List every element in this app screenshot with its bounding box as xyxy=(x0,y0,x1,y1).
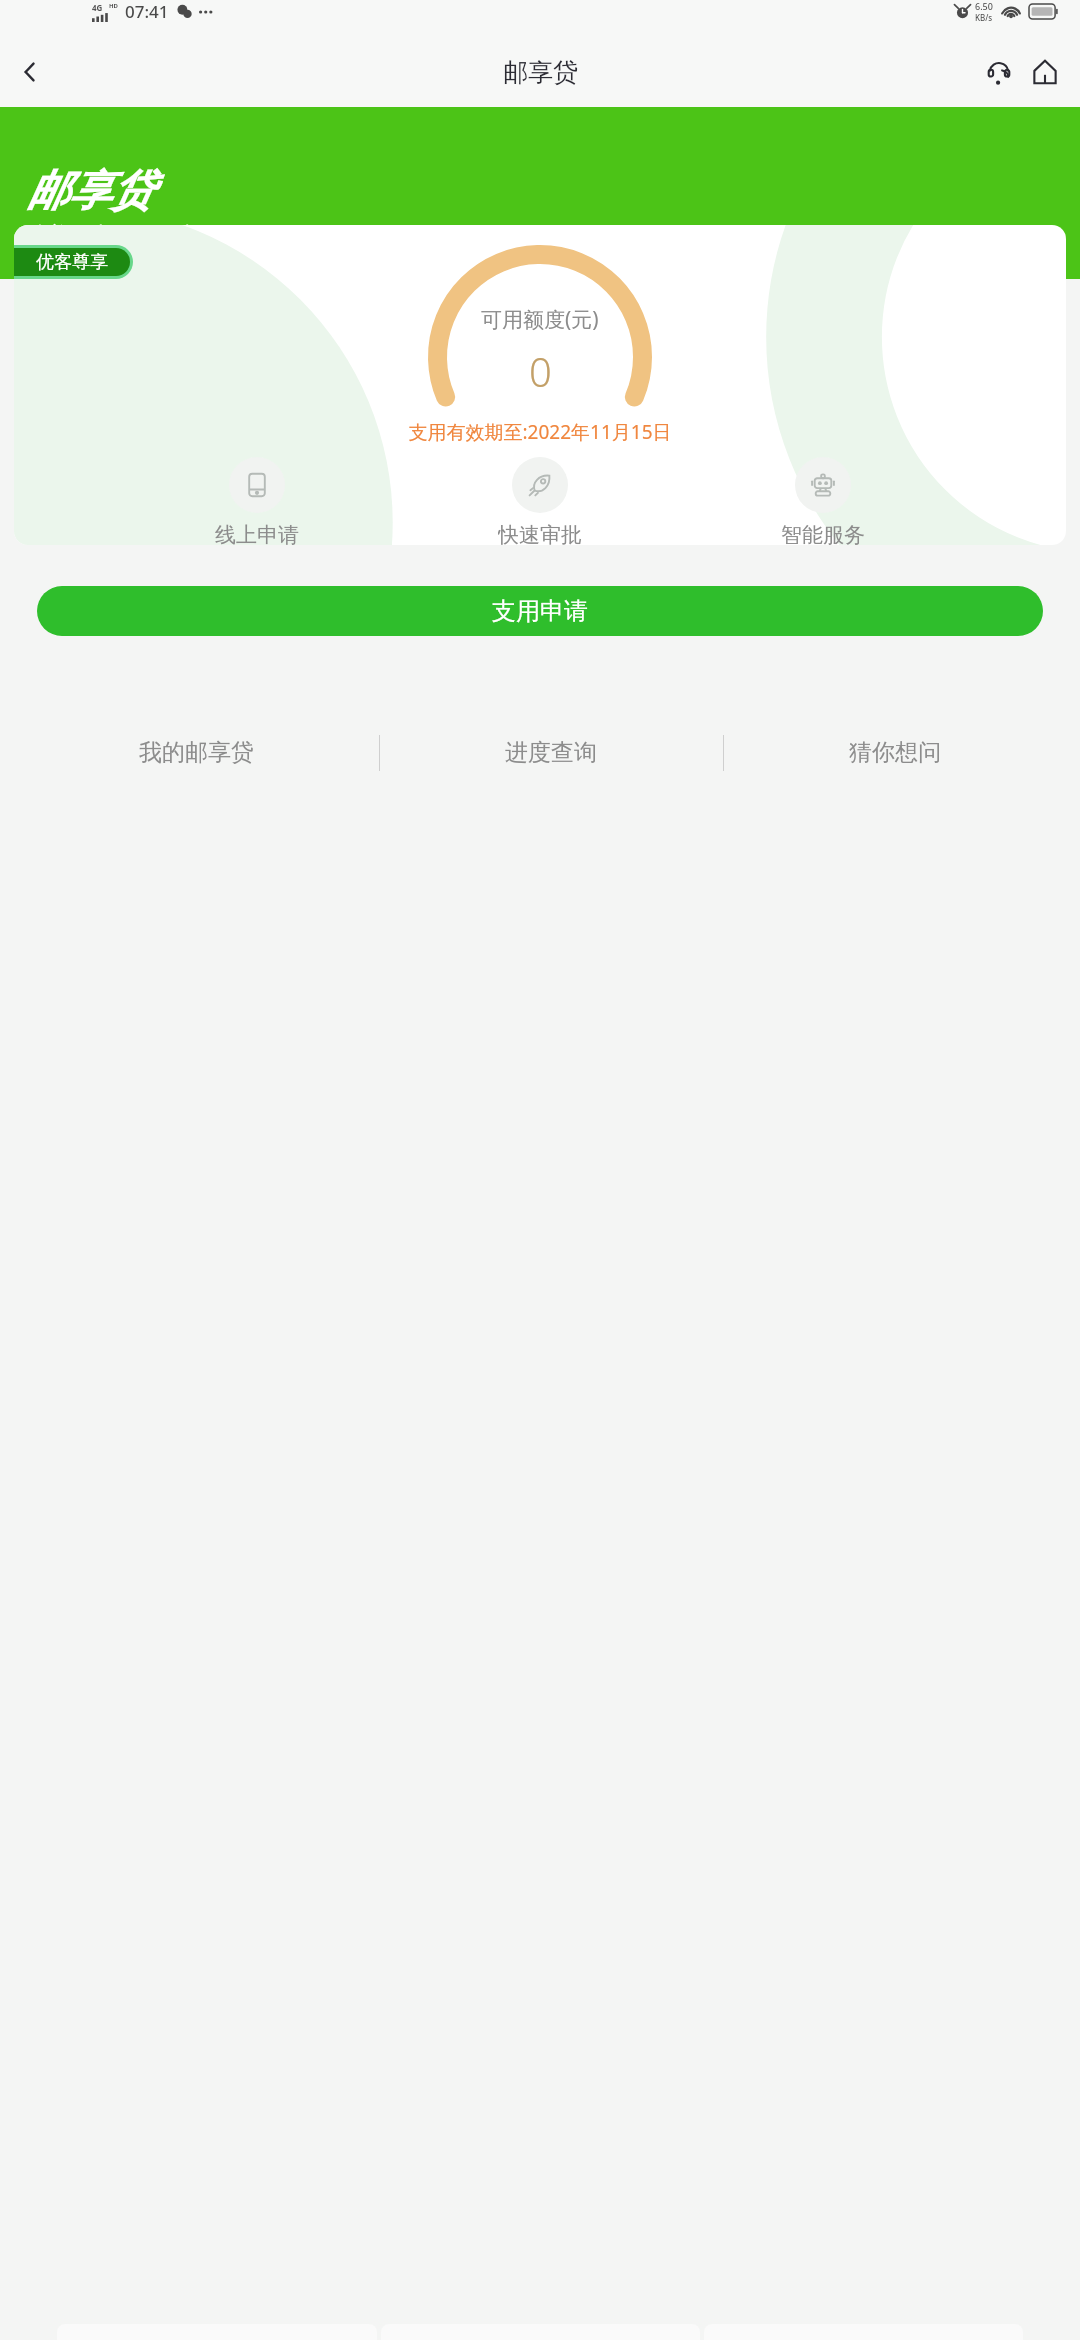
button[interactable]: 智能服务 xyxy=(771,457,875,545)
staticText: 支用有效期至:2022年11月15日 xyxy=(14,419,1066,445)
button[interactable]: 线上申请 xyxy=(205,457,309,545)
staticText: KB/s xyxy=(975,12,993,23)
staticText: 07:41 xyxy=(125,0,169,23)
staticText: 邮享贷 xyxy=(503,57,578,88)
staticText: 猜你想问 xyxy=(849,738,941,767)
staticText: 线上申请 xyxy=(215,522,299,545)
staticText: 0 xyxy=(529,344,552,398)
button[interactable]: 我的邮享贷 xyxy=(131,730,262,775)
button[interactable]: Customer service xyxy=(976,49,1022,95)
button[interactable]: Home xyxy=(1022,49,1068,95)
staticText: 6.50 xyxy=(975,0,993,12)
staticText: 邮享贷 xyxy=(27,165,153,218)
button[interactable]: 优客尊享 xyxy=(14,248,130,276)
button[interactable]: 猜你想问 xyxy=(841,730,949,775)
staticText: 我的邮享贷 xyxy=(139,738,254,767)
staticText: 快速审批 xyxy=(498,522,582,545)
staticText: 优客尊享 xyxy=(36,251,108,274)
button[interactable]: Back xyxy=(6,48,54,96)
staticText: 智能服务 xyxy=(781,522,865,545)
staticText: HD xyxy=(109,2,118,10)
staticText: 可用额度(元) xyxy=(481,305,599,334)
button[interactable]: 支用申请 xyxy=(37,586,1043,636)
button[interactable]: 快速审批 xyxy=(488,457,592,545)
button[interactable]: 进度查询 xyxy=(497,730,605,775)
staticText: 进度查询 xyxy=(505,738,597,767)
staticText: 让美好生活不等待 xyxy=(27,222,195,248)
staticText: 支用申请 xyxy=(492,596,588,626)
staticText: 4G xyxy=(92,2,103,13)
